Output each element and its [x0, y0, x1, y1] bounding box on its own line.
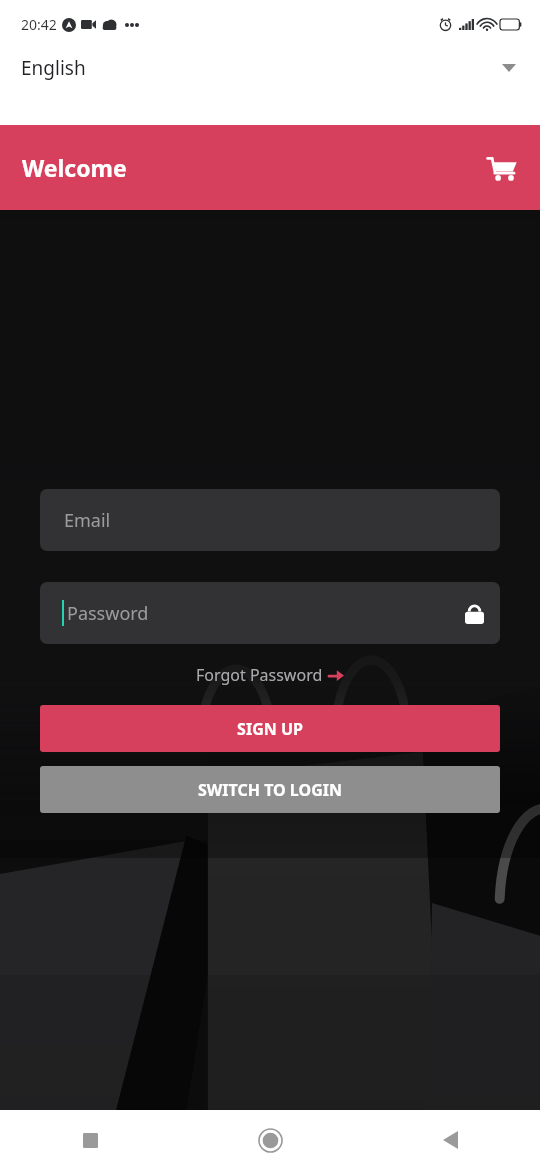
button[interactable]: Forgot Password — [190, 661, 350, 689]
staticText: 20:42 — [21, 15, 57, 34]
button[interactable]: Home — [180, 1110, 360, 1170]
staticText: English — [21, 55, 86, 81]
button[interactable]: SIGN UP — [40, 705, 500, 752]
staticText: SWITCH TO LOGIN — [198, 779, 342, 801]
button[interactable]: English — [0, 48, 540, 88]
staticText: Welcome — [22, 152, 127, 183]
staticText: Email — [64, 508, 111, 533]
staticText: Forgot Password — [196, 664, 323, 686]
button[interactable]: Back — [360, 1110, 540, 1170]
button[interactable]: Email — [40, 489, 500, 551]
button[interactable]: Password — [40, 582, 500, 644]
staticText: SIGN UP — [237, 718, 303, 740]
staticText: Password — [67, 601, 149, 626]
button[interactable]: Recents — [0, 1110, 180, 1170]
other: Choose language — [502, 64, 516, 72]
button[interactable]: SWITCH TO LOGIN — [40, 766, 500, 813]
button[interactable]: Cart — [478, 144, 526, 192]
